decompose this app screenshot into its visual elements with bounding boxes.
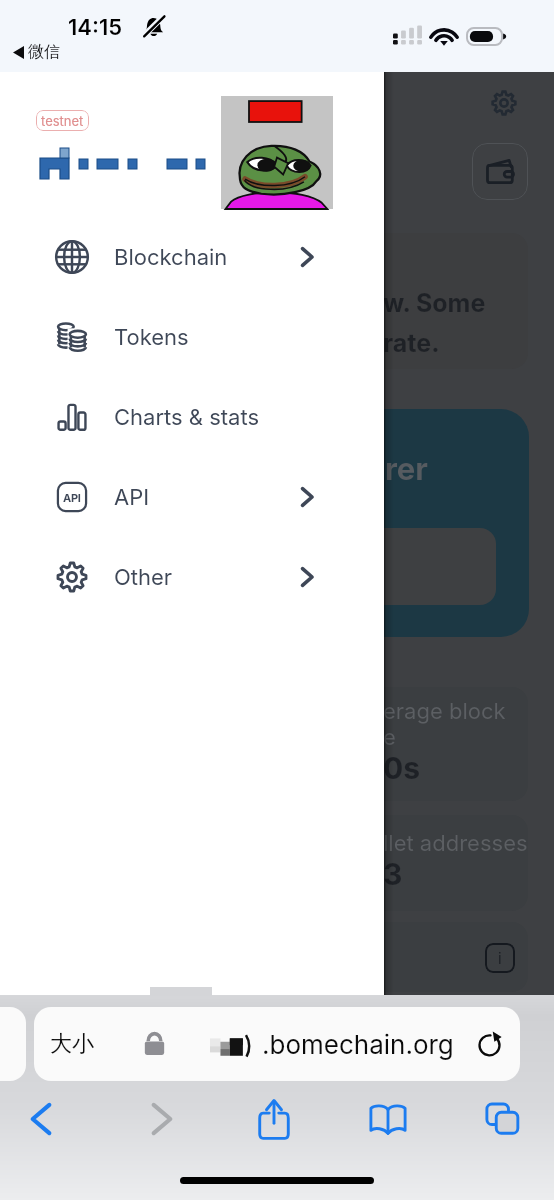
button[interactable]: Back	[9, 1089, 73, 1149]
button[interactable]: Tabs	[470, 1089, 534, 1149]
button[interactable]: Address bar	[34, 1007, 520, 1081]
button[interactable]: Blockchain	[0, 217, 384, 297]
button[interactable]: Text size	[50, 1030, 94, 1058]
staticText: API	[63, 491, 81, 504]
button[interactable]: Info	[485, 943, 515, 973]
button[interactable]: Bookmarks	[356, 1089, 420, 1149]
button[interactable]: Reload	[472, 1027, 506, 1061]
staticText: i	[498, 949, 502, 967]
button[interactable]: Settings	[486, 85, 522, 121]
staticText: rer	[385, 450, 428, 488]
staticText: .bomechain.org	[262, 1029, 454, 1060]
button[interactable]: Other	[0, 537, 384, 617]
button[interactable]: Forward	[130, 1089, 194, 1149]
staticText: 14:15	[68, 14, 123, 41]
staticText: API	[114, 484, 150, 511]
button[interactable]: Wallet	[472, 143, 528, 200]
button[interactable]: Charts & stats	[0, 377, 384, 457]
staticText: 0s	[383, 750, 421, 786]
staticText: Other	[114, 564, 173, 591]
staticText: 微信	[28, 42, 60, 62]
staticText: Blockchain	[114, 244, 228, 271]
staticText: w. Some	[383, 288, 486, 318]
staticText: llet addresses	[383, 830, 528, 857]
staticText: e	[383, 724, 396, 751]
staticText: 大小	[50, 1030, 94, 1058]
button[interactable]: Tokens	[0, 297, 384, 377]
button[interactable]: Back to WeChat	[13, 42, 60, 62]
staticText: rate.	[383, 328, 440, 358]
button[interactable]: API	[0, 457, 384, 537]
staticText: testnet	[41, 113, 84, 129]
staticText: Tokens	[114, 324, 189, 351]
button[interactable]: Avatar	[221, 96, 333, 209]
button[interactable]: Share	[242, 1089, 306, 1149]
staticText: erage block	[383, 698, 506, 725]
staticText: 3	[383, 856, 403, 892]
staticText: Charts & stats	[114, 404, 260, 431]
